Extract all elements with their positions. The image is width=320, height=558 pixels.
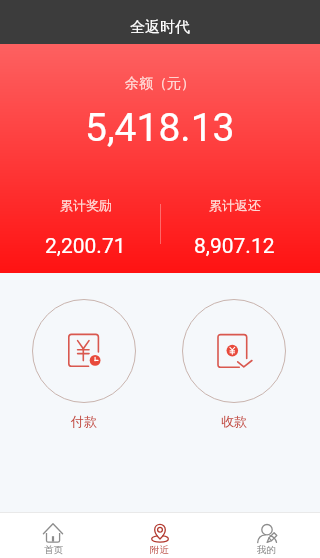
staticText: 付款 <box>71 413 97 429</box>
staticText: 5,418.13 <box>85 105 235 151</box>
button[interactable]: 收款 <box>182 299 286 429</box>
button[interactable]: 付款 <box>32 299 136 429</box>
staticText: 全返时代 <box>130 18 190 37</box>
staticText: 附近 <box>150 544 169 556</box>
staticText: 2,200.71 <box>45 234 126 259</box>
staticText: 累计奖励 <box>60 197 112 213</box>
staticText: 余额（元） <box>125 75 195 93</box>
staticText: 首页 <box>44 544 63 556</box>
staticText: 8,907.12 <box>194 234 275 259</box>
button[interactable]: 首页 <box>0 513 106 558</box>
staticText: 我的 <box>257 544 276 556</box>
staticText: 累计返还 <box>209 197 261 213</box>
staticText: 收款 <box>221 413 247 429</box>
button[interactable]: 附近 <box>106 513 213 558</box>
button[interactable]: 我的 <box>213 513 320 558</box>
